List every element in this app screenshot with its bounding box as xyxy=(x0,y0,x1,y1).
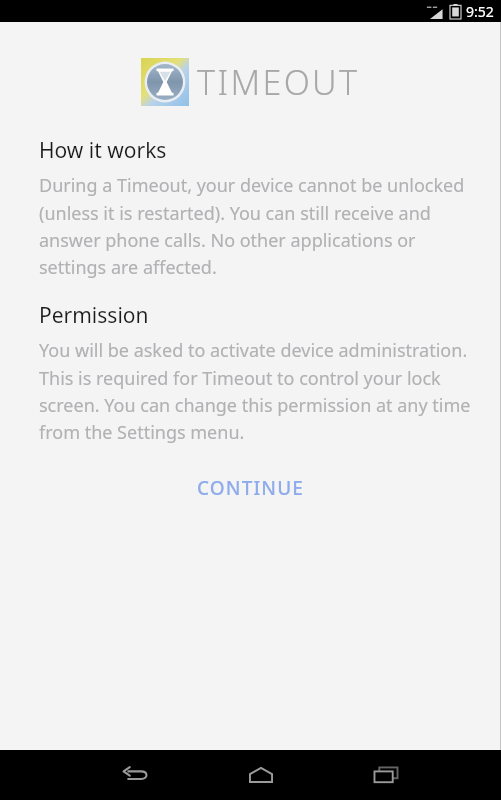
button[interactable]: Recent apps xyxy=(358,750,414,800)
button[interactable]: Back xyxy=(108,750,164,800)
staticText: During a Timeout, your device cannot be … xyxy=(39,173,471,279)
staticText: TIMEOUT xyxy=(197,59,360,105)
staticText: You will be asked to activate device adm… xyxy=(39,338,471,444)
staticText: Permission xyxy=(39,301,149,330)
staticText: 9:52 xyxy=(466,2,494,21)
button[interactable]: CONTINUE xyxy=(179,466,322,510)
button[interactable]: Home xyxy=(233,750,289,800)
staticText: How it works xyxy=(39,136,167,165)
staticText: CONTINUE xyxy=(197,475,304,501)
